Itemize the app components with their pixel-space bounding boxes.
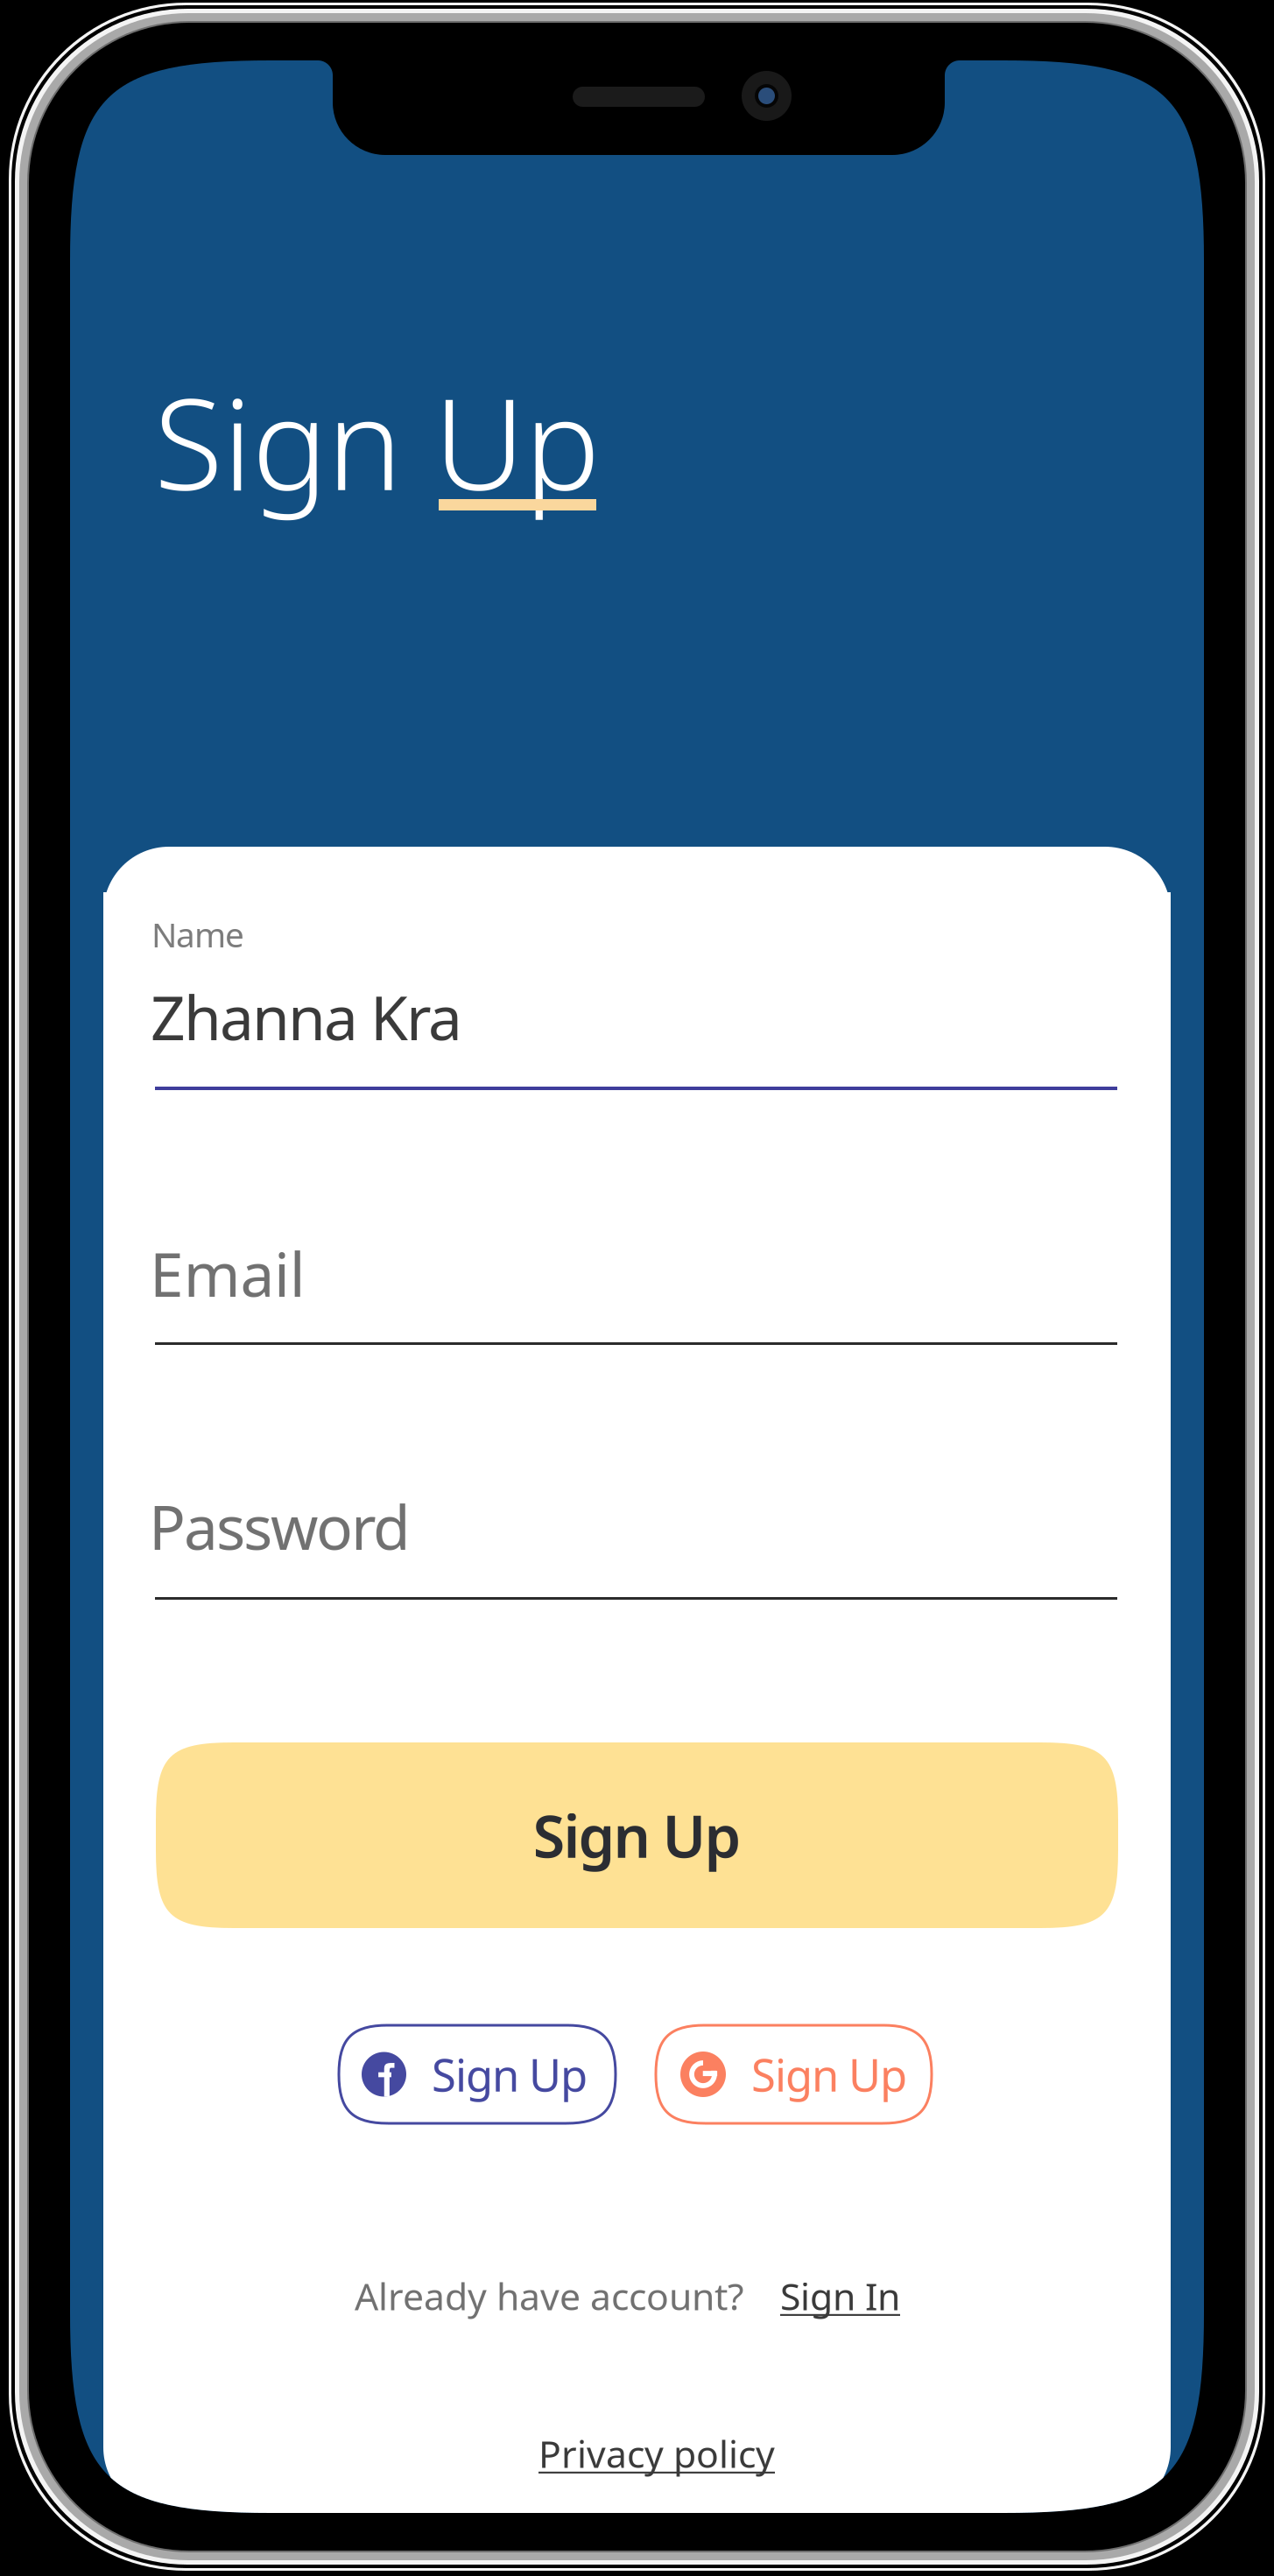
staticText: Sign Up [432, 2044, 588, 2104]
button[interactable]: Sign Up with Google [656, 2025, 932, 2123]
staticText: Sign Up [533, 1795, 741, 1875]
staticText: Email [150, 1232, 305, 1314]
staticText: Already have account? [355, 2270, 744, 2321]
staticText: Sign In [780, 2270, 900, 2321]
staticText: Sign Up [154, 355, 600, 527]
staticText: Sign Up [751, 2044, 907, 2104]
button[interactable]: Privacy policy [538, 2423, 801, 2484]
button[interactable]: Sign Up with Facebook [339, 2025, 616, 2123]
button[interactable]: Sign Up [156, 1742, 1118, 1928]
staticText: Privacy policy [538, 2428, 775, 2479]
button[interactable]: Password [103, 1467, 1171, 1601]
button[interactable]: Name, Zhanna Kra [103, 892, 1171, 1095]
staticText: Password [149, 1485, 411, 1567]
staticText: Zhanna Kra [151, 975, 462, 1058]
button[interactable]: Sign In [780, 2265, 955, 2326]
staticText: Name [151, 911, 244, 957]
button[interactable]: Email [103, 1214, 1171, 1348]
